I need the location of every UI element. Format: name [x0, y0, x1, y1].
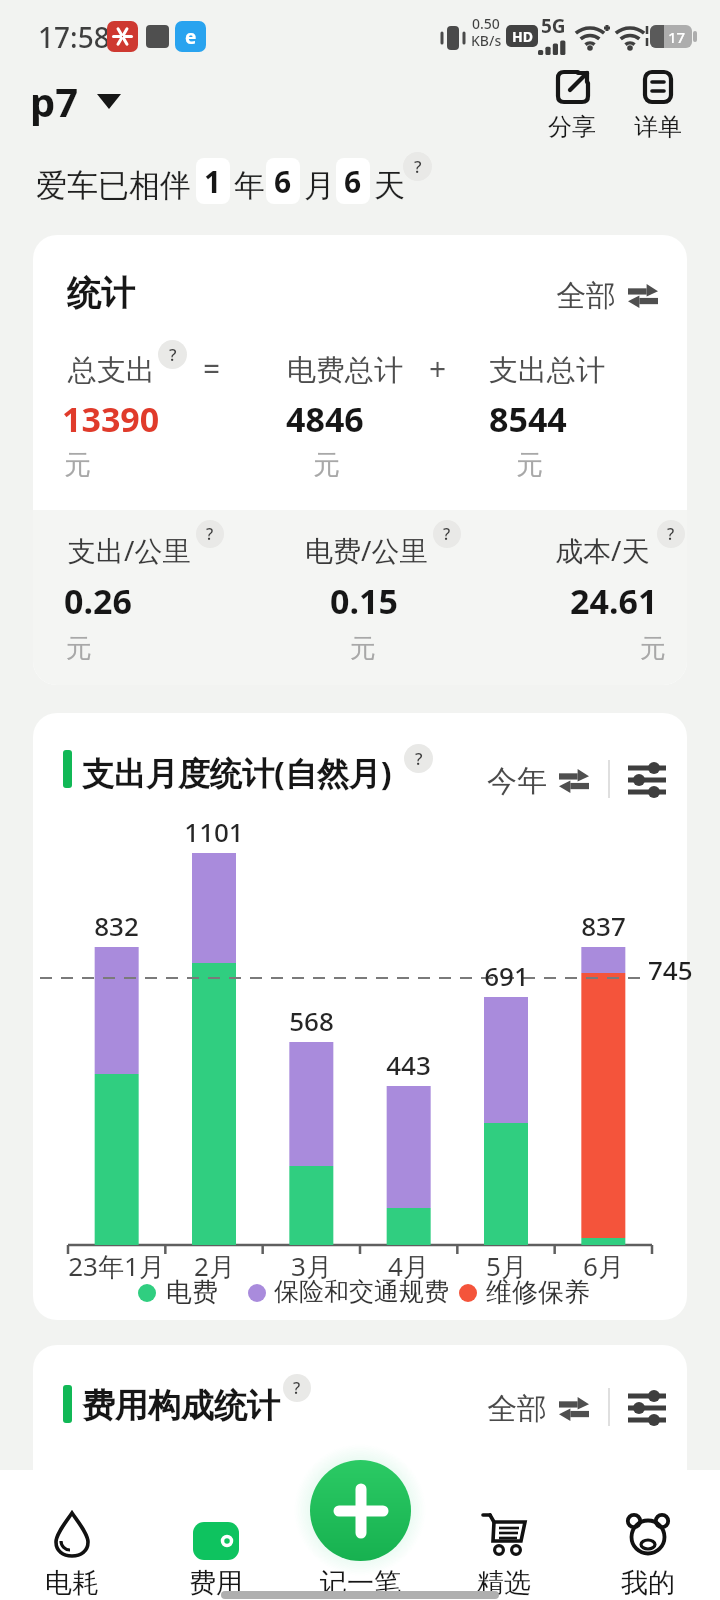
- staticText: 1101: [184, 814, 244, 849]
- staticText: 17: [668, 27, 686, 47]
- staticText: 天: [374, 166, 405, 205]
- staticText: ?: [415, 747, 423, 770]
- staticText: 元: [66, 632, 92, 665]
- staticText: 月: [304, 166, 335, 205]
- button[interactable]: 全部: [487, 1390, 589, 1428]
- staticText: 元: [640, 632, 666, 665]
- staticText: 电耗: [45, 1566, 99, 1600]
- staticText: 1: [204, 161, 222, 202]
- staticText: 6: [344, 161, 362, 202]
- staticText: 爱车已相伴: [36, 166, 191, 205]
- staticText: p7: [30, 74, 79, 128]
- button[interactable]: 精选: [459, 1498, 549, 1598]
- staticText: 13390: [62, 396, 160, 442]
- staticText: 0.15: [330, 578, 398, 624]
- staticText: 电费: [166, 1276, 218, 1309]
- staticText: 电费总计: [287, 352, 403, 389]
- button[interactable]: p7: [30, 74, 121, 128]
- button[interactable]: 全部: [556, 277, 658, 315]
- staticText: 元: [313, 448, 340, 482]
- staticText: 5G: [541, 13, 566, 39]
- button[interactable]: 详单: [632, 64, 684, 148]
- staticText: 4月: [388, 1248, 429, 1284]
- staticText: 维修保养: [486, 1276, 590, 1309]
- staticText: ?: [293, 1377, 301, 1399]
- staticText: 3月: [291, 1248, 332, 1284]
- button[interactable]: 我的: [603, 1498, 693, 1598]
- staticText: 6: [274, 161, 292, 202]
- staticText: +: [429, 348, 447, 389]
- staticText: 837: [581, 908, 626, 943]
- staticText: 总支出: [68, 352, 155, 389]
- staticText: 费用构成统计: [82, 1385, 280, 1427]
- button[interactable]: 电耗: [27, 1498, 117, 1598]
- button[interactable]: [310, 1460, 411, 1561]
- staticText: HD: [512, 27, 533, 46]
- staticText: 支出/公里: [68, 531, 191, 569]
- button[interactable]: 分享: [546, 64, 598, 148]
- staticText: 6月: [583, 1248, 624, 1284]
- staticText: 4846: [286, 396, 364, 442]
- staticText: 0.50: [472, 14, 500, 33]
- staticText: ?: [667, 523, 675, 545]
- staticText: =: [203, 348, 221, 389]
- staticText: 分享: [548, 112, 596, 142]
- staticText: 5月: [486, 1248, 527, 1284]
- staticText: 元: [516, 448, 543, 482]
- staticText: ?: [443, 523, 451, 545]
- staticText: KB/s: [471, 31, 502, 50]
- staticText: 我的: [621, 1566, 675, 1600]
- staticText: 全部: [487, 1390, 547, 1428]
- staticText: 支出总计: [489, 352, 605, 389]
- staticText: 832: [94, 908, 139, 943]
- staticText: 支出月度统计(自然月): [82, 751, 392, 795]
- staticText: 今年: [487, 762, 547, 800]
- staticText: 745: [648, 952, 693, 987]
- staticText: e: [185, 24, 197, 50]
- staticText: 443: [386, 1047, 431, 1082]
- staticText: 电费/公里: [305, 531, 428, 569]
- staticText: 23年1月: [68, 1248, 165, 1284]
- button[interactable]: [628, 1393, 666, 1423]
- staticText: 2月: [194, 1248, 235, 1284]
- staticText: 费用: [189, 1566, 243, 1600]
- button[interactable]: 今年: [487, 762, 589, 800]
- staticText: 保险和交通规费: [274, 1276, 449, 1307]
- staticText: 0.26: [64, 578, 132, 624]
- staticText: 统计: [67, 272, 135, 315]
- staticText: ?: [169, 343, 177, 366]
- staticText: 成本/天: [555, 531, 650, 569]
- button[interactable]: [628, 765, 666, 795]
- staticText: 568: [289, 1003, 334, 1038]
- staticText: 691: [484, 958, 529, 993]
- staticText: ?: [206, 523, 214, 545]
- staticText: 年: [234, 166, 265, 205]
- staticText: 24.61: [570, 578, 658, 624]
- staticText: 元: [64, 448, 91, 482]
- staticText: 详单: [634, 112, 682, 142]
- button[interactable]: 费用: [171, 1498, 261, 1598]
- staticText: 8544: [489, 396, 567, 442]
- staticText: 记一笔: [320, 1566, 401, 1600]
- staticText: 精选: [477, 1566, 531, 1600]
- staticText: ?: [414, 155, 422, 178]
- staticText: 元: [350, 632, 376, 665]
- staticText: 17:58: [38, 18, 110, 56]
- staticText: 全部: [556, 277, 616, 315]
